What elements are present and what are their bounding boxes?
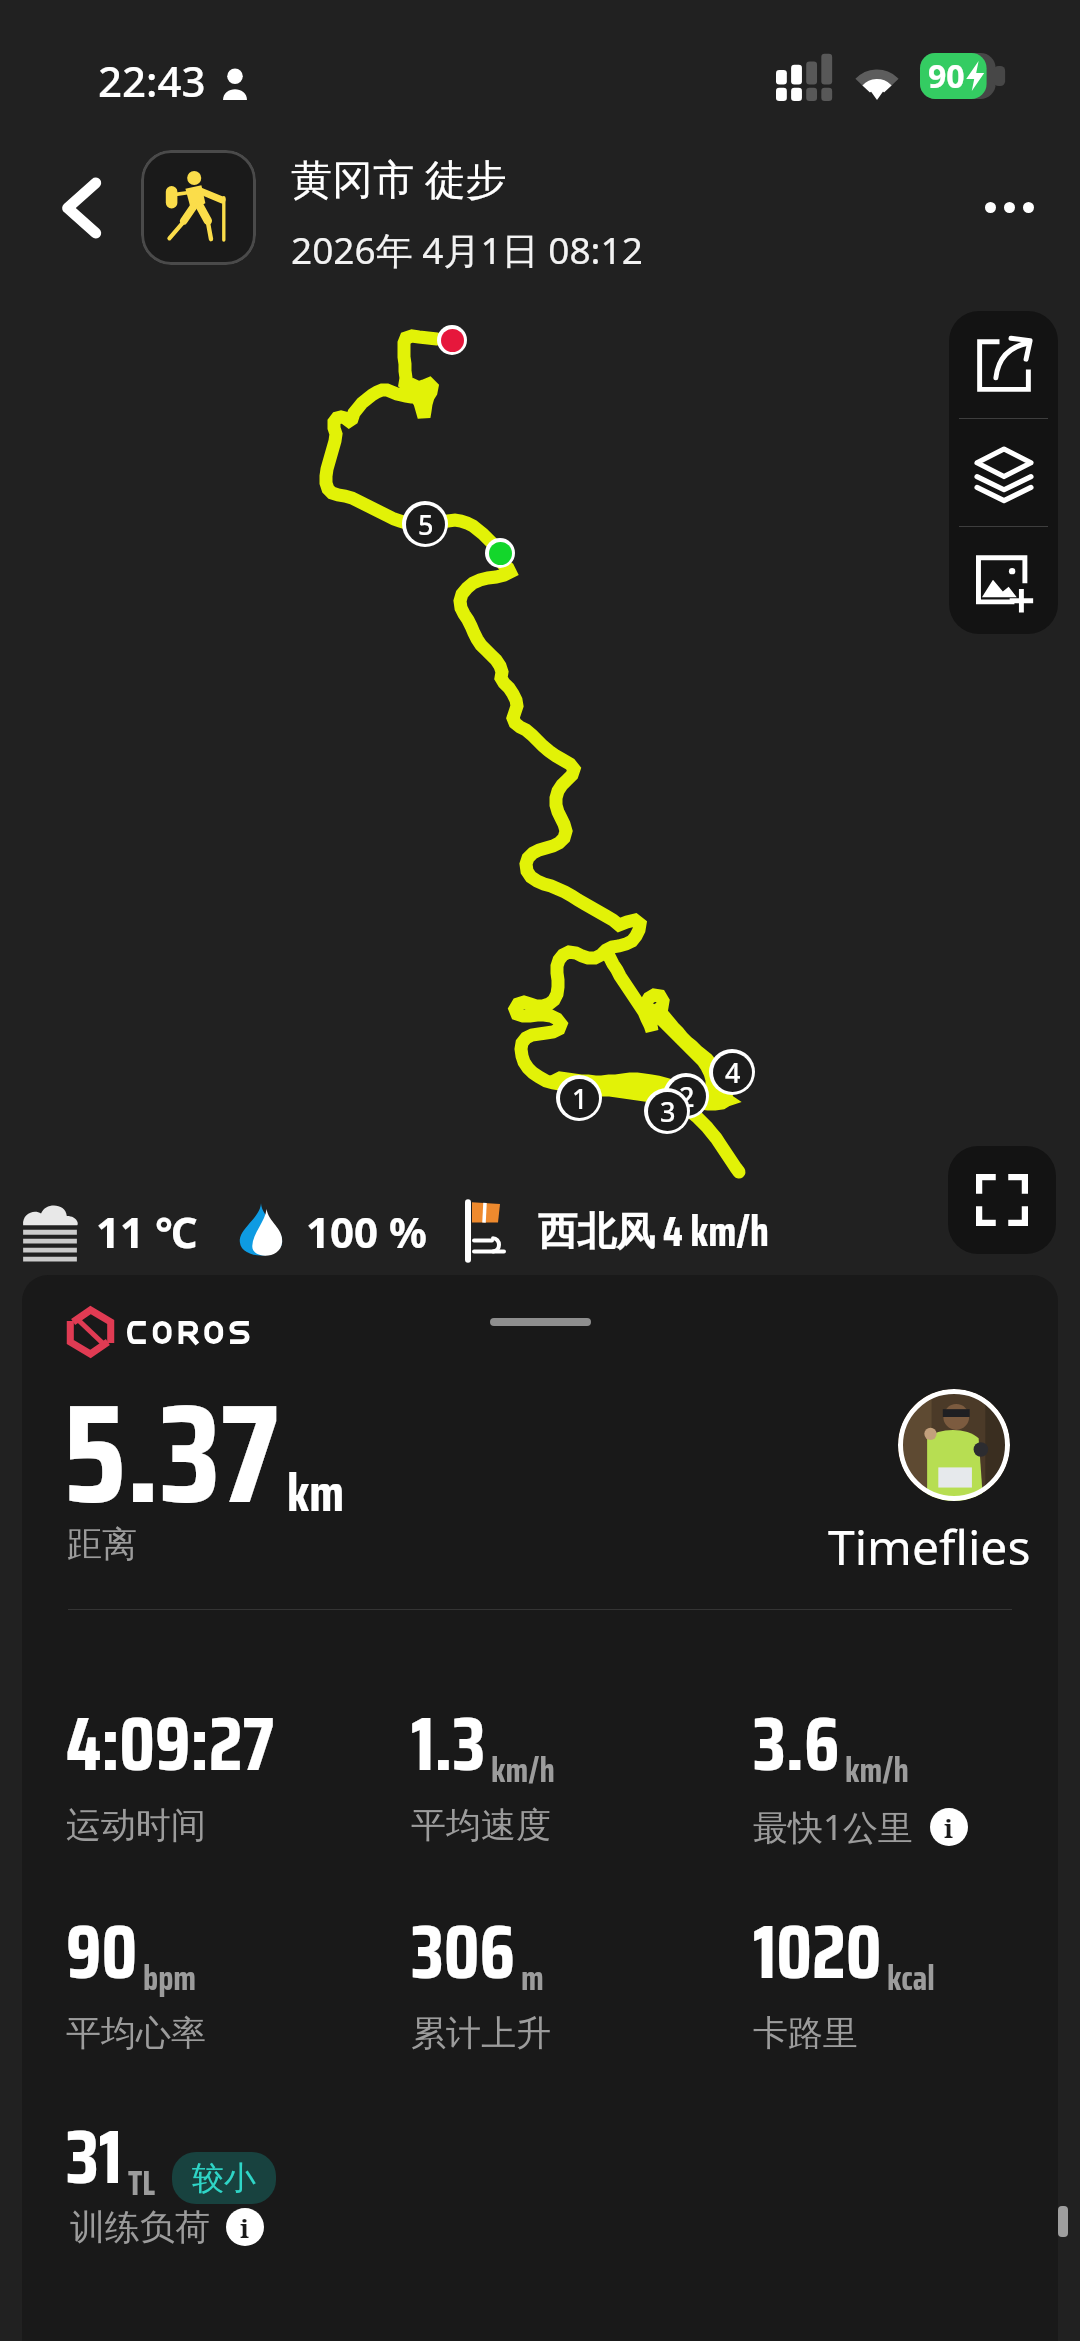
staticText: km/h bbox=[491, 1743, 555, 1797]
staticText: Timeflies bbox=[828, 1514, 1031, 1579]
staticText: i bbox=[944, 1810, 954, 1845]
staticText: km/h bbox=[845, 1743, 909, 1797]
button[interactable]: Lap 4 bbox=[709, 1049, 755, 1095]
staticText: 训练负荷 bbox=[70, 2205, 210, 2249]
staticText: i bbox=[240, 2210, 250, 2245]
staticText: bpm bbox=[143, 1951, 197, 2005]
staticText: 1.3 bbox=[411, 1685, 486, 1803]
staticText: 4 km/h bbox=[663, 1198, 770, 1264]
staticText: 较小 bbox=[192, 2158, 256, 2198]
staticText: 运动时间 bbox=[66, 1803, 206, 1847]
button[interactable]: Lap 1 bbox=[556, 1075, 602, 1121]
staticText: 22:43 bbox=[98, 52, 206, 109]
button[interactable]: Back bbox=[43, 170, 119, 246]
staticText: 31 bbox=[66, 2098, 123, 2216]
staticText: 1 bbox=[572, 1080, 588, 1117]
staticText: 累计上升 bbox=[411, 2011, 551, 2055]
button[interactable]: Info bbox=[226, 2208, 264, 2246]
staticText: 306 bbox=[411, 1893, 516, 2011]
staticText: 平均速度 bbox=[411, 1803, 551, 1847]
button[interactable]: More options bbox=[964, 174, 1054, 240]
button[interactable]: Share bbox=[949, 311, 1058, 418]
staticText: 4:09:27 bbox=[66, 1685, 275, 1803]
button[interactable]: Hiking activity bbox=[141, 150, 256, 265]
staticText: TL bbox=[128, 2156, 156, 2210]
button[interactable]: Info bbox=[930, 1808, 968, 1846]
staticText: 卡路里 bbox=[753, 2011, 858, 2055]
button[interactable]: Lap 2 bbox=[663, 1073, 709, 1119]
staticText: 西北风 bbox=[538, 1207, 655, 1256]
staticText: 2026年 4月1日 08:12 bbox=[291, 224, 643, 275]
staticText: 5 bbox=[418, 506, 434, 543]
staticText: 11 ℃ bbox=[96, 1203, 198, 1260]
button[interactable]: Add photo bbox=[949, 527, 1058, 634]
button[interactable]: Full screen bbox=[948, 1146, 1056, 1254]
staticText: 最快1公里 bbox=[753, 1803, 914, 1851]
staticText: 平均心率 bbox=[66, 2011, 206, 2055]
staticText: 3 bbox=[660, 1093, 676, 1130]
button[interactable]: Map layers bbox=[949, 419, 1058, 526]
button[interactable]: Profile photo bbox=[898, 1389, 1010, 1501]
staticText: m bbox=[521, 1951, 544, 2005]
staticText: 90 bbox=[928, 54, 965, 98]
button[interactable]: Lap 5 bbox=[402, 501, 448, 547]
button[interactable]: Lap 3 bbox=[644, 1088, 690, 1134]
staticText: 黄冈市 徒步 bbox=[291, 150, 507, 206]
staticText: 3.6 bbox=[753, 1685, 840, 1803]
staticText: 2 bbox=[679, 1078, 695, 1115]
staticText: 4 bbox=[725, 1054, 741, 1091]
staticText: kcal bbox=[887, 1951, 935, 2005]
staticText: 距离 bbox=[67, 1522, 137, 1566]
staticText: 100 % bbox=[306, 1203, 427, 1260]
staticText: km bbox=[287, 1452, 345, 1534]
staticText: 90 bbox=[66, 1893, 138, 2011]
staticText: 1020 bbox=[753, 1893, 882, 2011]
staticText: 5.37 bbox=[63, 1344, 279, 1563]
